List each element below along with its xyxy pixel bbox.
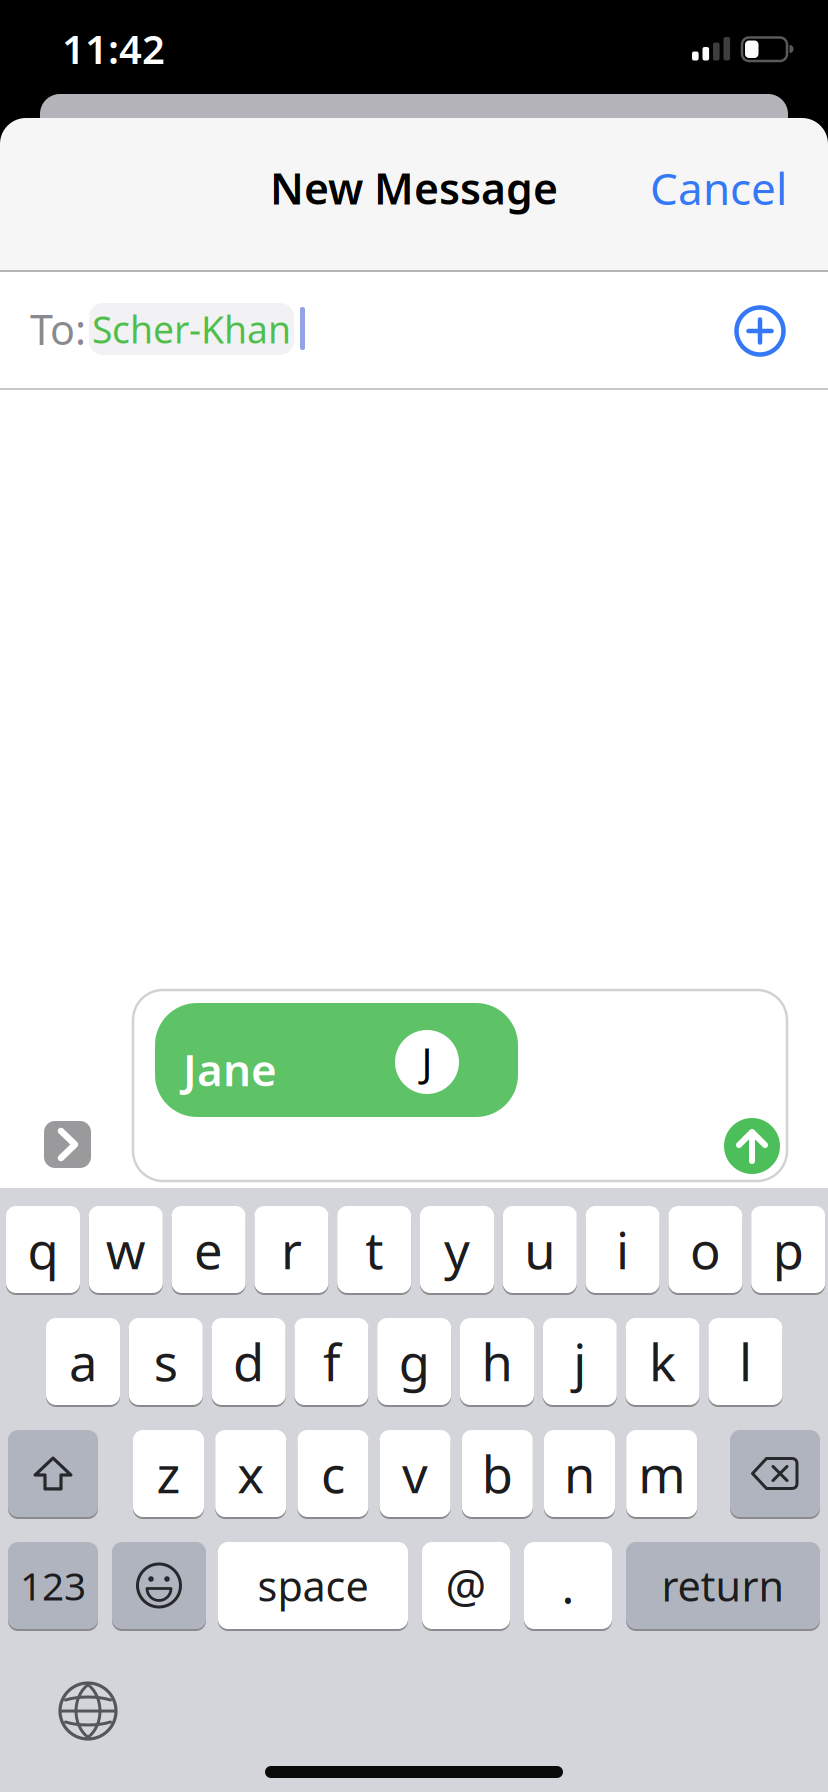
button[interactable]: x bbox=[215, 1429, 286, 1518]
staticText: 11:42 bbox=[62, 22, 165, 75]
button[interactable]: l bbox=[708, 1317, 782, 1406]
staticText: i bbox=[616, 1216, 629, 1283]
staticText: . bbox=[561, 1554, 574, 1617]
button[interactable]: space bbox=[218, 1541, 408, 1630]
button[interactable]: Emoji bbox=[112, 1541, 206, 1630]
button[interactable]: s bbox=[129, 1317, 203, 1406]
staticText: Cancel bbox=[650, 159, 787, 217]
staticText: w bbox=[106, 1216, 146, 1283]
button[interactable]: v bbox=[380, 1429, 451, 1518]
staticText: u bbox=[524, 1216, 555, 1283]
staticText: j bbox=[573, 1328, 586, 1395]
button[interactable]: g bbox=[377, 1317, 451, 1406]
button[interactable]: f bbox=[294, 1317, 368, 1406]
button[interactable]: m bbox=[626, 1429, 697, 1518]
button[interactable]: y bbox=[420, 1205, 494, 1294]
button[interactable]: 123 bbox=[8, 1541, 98, 1630]
staticText: z bbox=[156, 1440, 180, 1507]
button[interactable]: q bbox=[6, 1205, 80, 1294]
button[interactable]: c bbox=[297, 1429, 368, 1518]
staticText: n bbox=[564, 1440, 595, 1507]
staticText: q bbox=[27, 1216, 58, 1283]
staticText: Jane bbox=[183, 1040, 277, 1098]
staticText: b bbox=[482, 1440, 513, 1507]
staticText: y bbox=[444, 1216, 470, 1283]
button[interactable]: j bbox=[543, 1317, 617, 1406]
staticText: @ bbox=[445, 1555, 486, 1616]
staticText: return bbox=[661, 1558, 784, 1613]
button[interactable]: return bbox=[626, 1541, 820, 1630]
button[interactable]: Send bbox=[724, 1118, 780, 1174]
staticText: o bbox=[690, 1216, 721, 1283]
staticText: To: bbox=[30, 302, 86, 356]
staticText: e bbox=[194, 1216, 223, 1283]
button[interactable]: Next Keyboard bbox=[59, 1682, 117, 1740]
staticText: space bbox=[257, 1558, 368, 1613]
button[interactable]: Cancel bbox=[597, 158, 787, 218]
staticText: m bbox=[638, 1440, 685, 1507]
staticText: f bbox=[323, 1328, 340, 1395]
button[interactable]: Scher-Khan bbox=[89, 303, 294, 355]
button[interactable]: h bbox=[460, 1317, 534, 1406]
button[interactable]: Delete bbox=[730, 1429, 820, 1518]
button[interactable]: @ bbox=[422, 1541, 510, 1630]
staticText: New Message bbox=[270, 160, 558, 216]
staticText: d bbox=[233, 1328, 264, 1395]
staticText: a bbox=[69, 1328, 97, 1395]
staticText: l bbox=[739, 1328, 752, 1395]
button[interactable]: Shift bbox=[8, 1429, 98, 1518]
staticText: s bbox=[154, 1328, 178, 1395]
button[interactable]: Expand bbox=[44, 1121, 91, 1168]
staticText: r bbox=[281, 1216, 302, 1283]
staticText: p bbox=[773, 1216, 804, 1283]
button[interactable]: i bbox=[586, 1205, 660, 1294]
button[interactable]: r bbox=[254, 1205, 328, 1294]
staticText: v bbox=[402, 1440, 428, 1507]
staticText: Scher-Khan bbox=[92, 304, 291, 354]
button[interactable]: o bbox=[668, 1205, 742, 1294]
button[interactable]: p bbox=[751, 1205, 825, 1294]
staticText: J bbox=[421, 1035, 432, 1088]
button[interactable]: e bbox=[172, 1205, 246, 1294]
button[interactable]: z bbox=[133, 1429, 204, 1518]
button[interactable]: n bbox=[544, 1429, 615, 1518]
staticText: g bbox=[399, 1328, 430, 1395]
button[interactable]: b bbox=[462, 1429, 533, 1518]
staticText: x bbox=[237, 1440, 264, 1507]
staticText: h bbox=[481, 1328, 512, 1395]
staticText: 123 bbox=[20, 1560, 86, 1611]
staticText: c bbox=[321, 1440, 345, 1507]
button[interactable]: Add Contact bbox=[736, 307, 784, 355]
button[interactable]: . bbox=[524, 1541, 612, 1630]
button[interactable]: t bbox=[337, 1205, 411, 1294]
button[interactable]: w bbox=[89, 1205, 163, 1294]
button[interactable]: k bbox=[626, 1317, 700, 1406]
button[interactable]: d bbox=[212, 1317, 286, 1406]
staticText: k bbox=[649, 1328, 676, 1395]
button[interactable]: u bbox=[503, 1205, 577, 1294]
button[interactable]: a bbox=[46, 1317, 120, 1406]
staticText: t bbox=[365, 1216, 383, 1283]
